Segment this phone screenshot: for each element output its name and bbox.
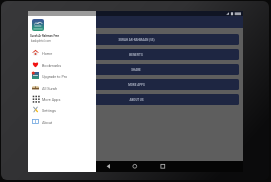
staticText: Settings — [42, 108, 56, 112]
button[interactable]: SURAH AR-RAHMAAN (55) — [33, 34, 239, 45]
staticText: SURAH AR-RAHMAAN (55) — [118, 38, 155, 42]
button[interactable]: ABOUT US — [33, 94, 239, 105]
button[interactable]: Settings — [28, 104, 96, 115]
staticText: Home — [42, 51, 53, 55]
staticText: Surah Ar Rahman Free — [30, 34, 60, 37]
button[interactable]: All Surah — [28, 82, 96, 93]
staticText: Upgrade to Pro — [42, 74, 68, 78]
staticText: More Apps — [42, 97, 61, 101]
staticText: About — [42, 120, 53, 124]
button[interactable]: SHARE — [33, 64, 239, 75]
staticText: Bookmarks — [42, 63, 62, 67]
staticText: MORE APPS — [128, 83, 145, 87]
button[interactable]: Upgrade to Pro — [28, 70, 96, 81]
button[interactable]: Bookmarks — [28, 59, 96, 70]
staticText: ABOUT US — [129, 98, 144, 102]
button[interactable]: BENEFITS — [33, 49, 239, 60]
staticText: SHARE — [131, 68, 141, 72]
staticText: All Surah — [42, 86, 57, 90]
button[interactable]: Home — [28, 47, 96, 58]
staticText: kaalqohtol.com — [31, 39, 51, 42]
button[interactable]: MORE APPS — [33, 79, 239, 90]
staticText: BENEFITS — [129, 53, 143, 57]
button[interactable]: More Apps — [28, 93, 96, 104]
button[interactable]: About — [28, 116, 96, 127]
